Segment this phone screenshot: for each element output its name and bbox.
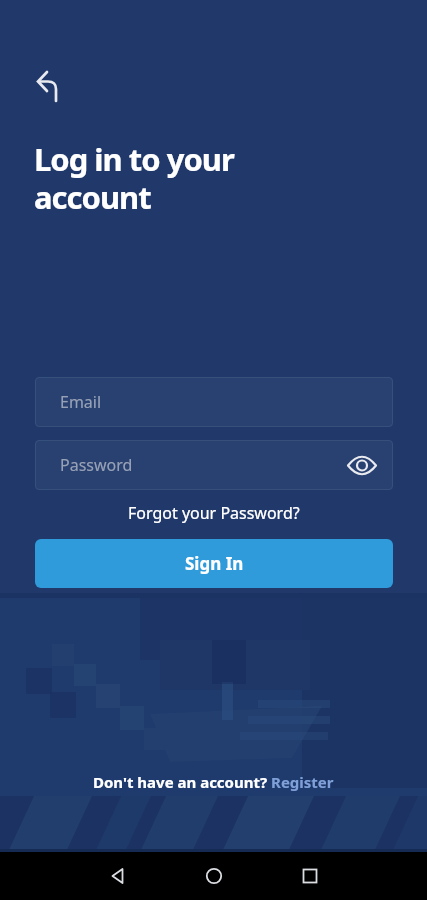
button[interactable]: Don't have an account? Register [93,772,334,792]
staticText: Email [60,391,102,413]
button[interactable] [166,852,262,900]
button[interactable] [70,852,166,900]
button[interactable]: Sign In [35,539,393,588]
staticText: Log in to your account [34,138,234,218]
staticText: Sign In [185,552,244,575]
button[interactable]: Forgot your Password? [128,502,300,524]
button[interactable] [338,441,386,489]
button[interactable] [262,852,358,900]
button[interactable]: Password [35,440,393,490]
button[interactable]: Email [35,377,393,427]
button[interactable] [28,56,68,106]
staticText: Password [60,454,133,476]
